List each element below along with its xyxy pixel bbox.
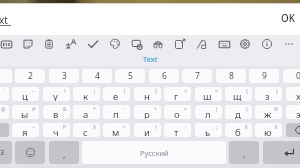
button[interactable]: ш <box>195 87 222 101</box>
button[interactable]: э <box>286 105 300 119</box>
staticText: + <box>154 106 157 113</box>
button[interactable]: Period <box>229 141 259 164</box>
button[interactable]: м <box>103 123 130 137</box>
button[interactable]: я <box>12 123 39 137</box>
button[interactable]: ф <box>0 105 9 119</box>
staticText: \ <box>64 88 66 95</box>
button[interactable]: More options <box>279 36 299 52</box>
button[interactable]: д <box>225 105 252 119</box>
button[interactable]: х <box>286 87 300 101</box>
button[interactable]: ю <box>255 123 282 137</box>
staticText: ы <box>21 108 29 119</box>
button[interactable]: 9 <box>249 69 279 83</box>
button[interactable]: ц <box>12 87 39 101</box>
staticText: р <box>144 108 150 119</box>
button[interactable]: Shift <box>0 123 9 137</box>
button[interactable]: Theme <box>105 36 125 52</box>
button[interactable]: р <box>134 105 161 119</box>
button[interactable]: з <box>255 87 282 101</box>
button[interactable]: GIF <box>0 36 16 52</box>
staticText: т <box>174 126 179 137</box>
button[interactable]: 4 <box>82 69 112 83</box>
button[interactable]: Spell check <box>83 36 103 52</box>
button[interactable]: 7 <box>182 69 212 83</box>
staticText: к <box>83 90 89 101</box>
staticText: и <box>144 126 150 137</box>
staticText: ю <box>264 126 272 137</box>
button[interactable]: н <box>134 87 161 101</box>
button[interactable]: Symbols <box>0 141 12 164</box>
button[interactable]: и <box>134 123 161 137</box>
staticText: § <box>245 124 248 131</box>
button[interactable]: ж <box>255 105 282 119</box>
button[interactable]: к <box>73 87 100 101</box>
staticText: ч <box>53 126 59 137</box>
staticText: = <box>184 106 187 113</box>
button[interactable]: 8 <box>216 69 246 83</box>
button[interactable]: 3 <box>49 69 79 83</box>
button[interactable]: ы <box>12 105 39 119</box>
staticText: э <box>296 108 300 119</box>
button[interactable]: щ <box>225 87 252 101</box>
staticText: xt <box>0 13 8 27</box>
staticText: 6 <box>162 70 167 82</box>
staticText: ц <box>22 90 28 101</box>
button[interactable]: Settings <box>235 36 255 52</box>
button[interactable]: а <box>73 105 100 119</box>
staticText: . <box>243 148 246 160</box>
button[interactable]: xt <box>0 13 8 27</box>
staticText: ь <box>205 126 211 137</box>
staticText: 5 <box>128 70 133 82</box>
button[interactable]: Clipboard <box>39 36 59 52</box>
button[interactable]: с <box>73 123 100 137</box>
button[interactable]: Emoji <box>15 141 45 164</box>
button[interactable]: 6 <box>149 69 179 83</box>
staticText: OK <box>281 12 295 25</box>
button[interactable]: Backspace <box>286 123 300 137</box>
button[interactable]: 2 <box>15 69 45 83</box>
button[interactable]: Translate <box>61 36 81 52</box>
staticText: 9 <box>262 70 267 82</box>
button[interactable]: Enter <box>263 141 300 164</box>
button[interactable]: Info <box>257 36 277 52</box>
button[interactable]: Русский <box>82 141 226 164</box>
button[interactable]: в <box>43 105 70 119</box>
button[interactable]: б <box>225 123 252 137</box>
button[interactable]: у <box>43 87 70 101</box>
button[interactable]: п <box>103 105 130 119</box>
staticText: € <box>275 124 278 131</box>
button[interactable]: Handwriting <box>192 36 212 52</box>
button[interactable]: Incognito <box>148 36 168 52</box>
button[interactable]: ь <box>195 123 222 137</box>
button[interactable]: Resize keyboard <box>214 36 234 52</box>
staticText: 4 <box>95 70 100 82</box>
button[interactable]: Stickers <box>18 36 38 52</box>
staticText: в <box>53 108 59 119</box>
staticText: д <box>235 108 241 119</box>
button[interactable]: л <box>195 105 222 119</box>
button[interactable]: OK <box>278 11 298 25</box>
button[interactable]: Share screenshot <box>170 36 190 52</box>
button[interactable]: й <box>0 87 9 101</box>
button[interactable]: ч <box>43 123 70 137</box>
staticText: 3 <box>62 70 67 82</box>
button[interactable]: т <box>164 123 191 137</box>
button[interactable]: Comma <box>49 141 79 164</box>
staticText: н <box>144 90 150 101</box>
button[interactable]: г <box>164 87 191 101</box>
button[interactable]: 5 <box>115 69 145 83</box>
staticText: з <box>265 90 270 101</box>
staticText: 7 <box>195 70 200 82</box>
button[interactable]: е <box>103 87 130 101</box>
staticText: ?123 <box>0 148 5 158</box>
staticText: @ <box>1 106 6 113</box>
button[interactable]: 0 <box>283 69 300 83</box>
staticText: л <box>205 108 211 119</box>
staticText: ш <box>203 90 212 101</box>
staticText: е <box>113 90 119 101</box>
staticText: $ <box>93 124 96 131</box>
staticText: б <box>235 126 241 137</box>
button[interactable]: Image settings <box>127 36 147 52</box>
button[interactable]: о <box>164 105 191 119</box>
